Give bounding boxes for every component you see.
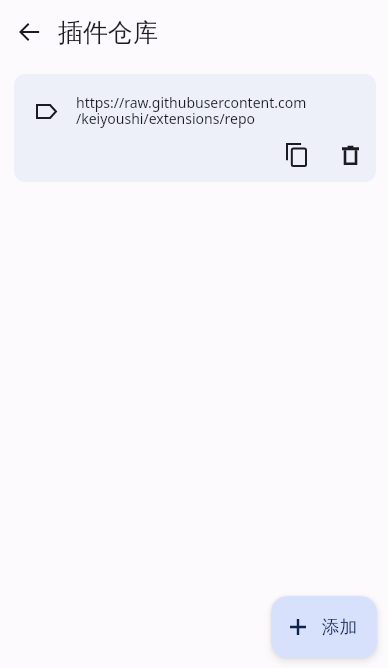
staticText: https://raw.githubusercontent.com /keiyo… xyxy=(76,93,307,128)
button[interactable]: Delete xyxy=(330,135,370,175)
button[interactable]: Copy xyxy=(276,135,316,175)
button[interactable]: Back xyxy=(6,8,54,56)
staticText: 添加 xyxy=(322,616,357,638)
staticText: 插件仓库 xyxy=(58,17,158,48)
button[interactable]: https://raw.githubusercontent.com /keiyo… xyxy=(14,74,376,182)
button[interactable]: 添加 xyxy=(271,596,377,658)
